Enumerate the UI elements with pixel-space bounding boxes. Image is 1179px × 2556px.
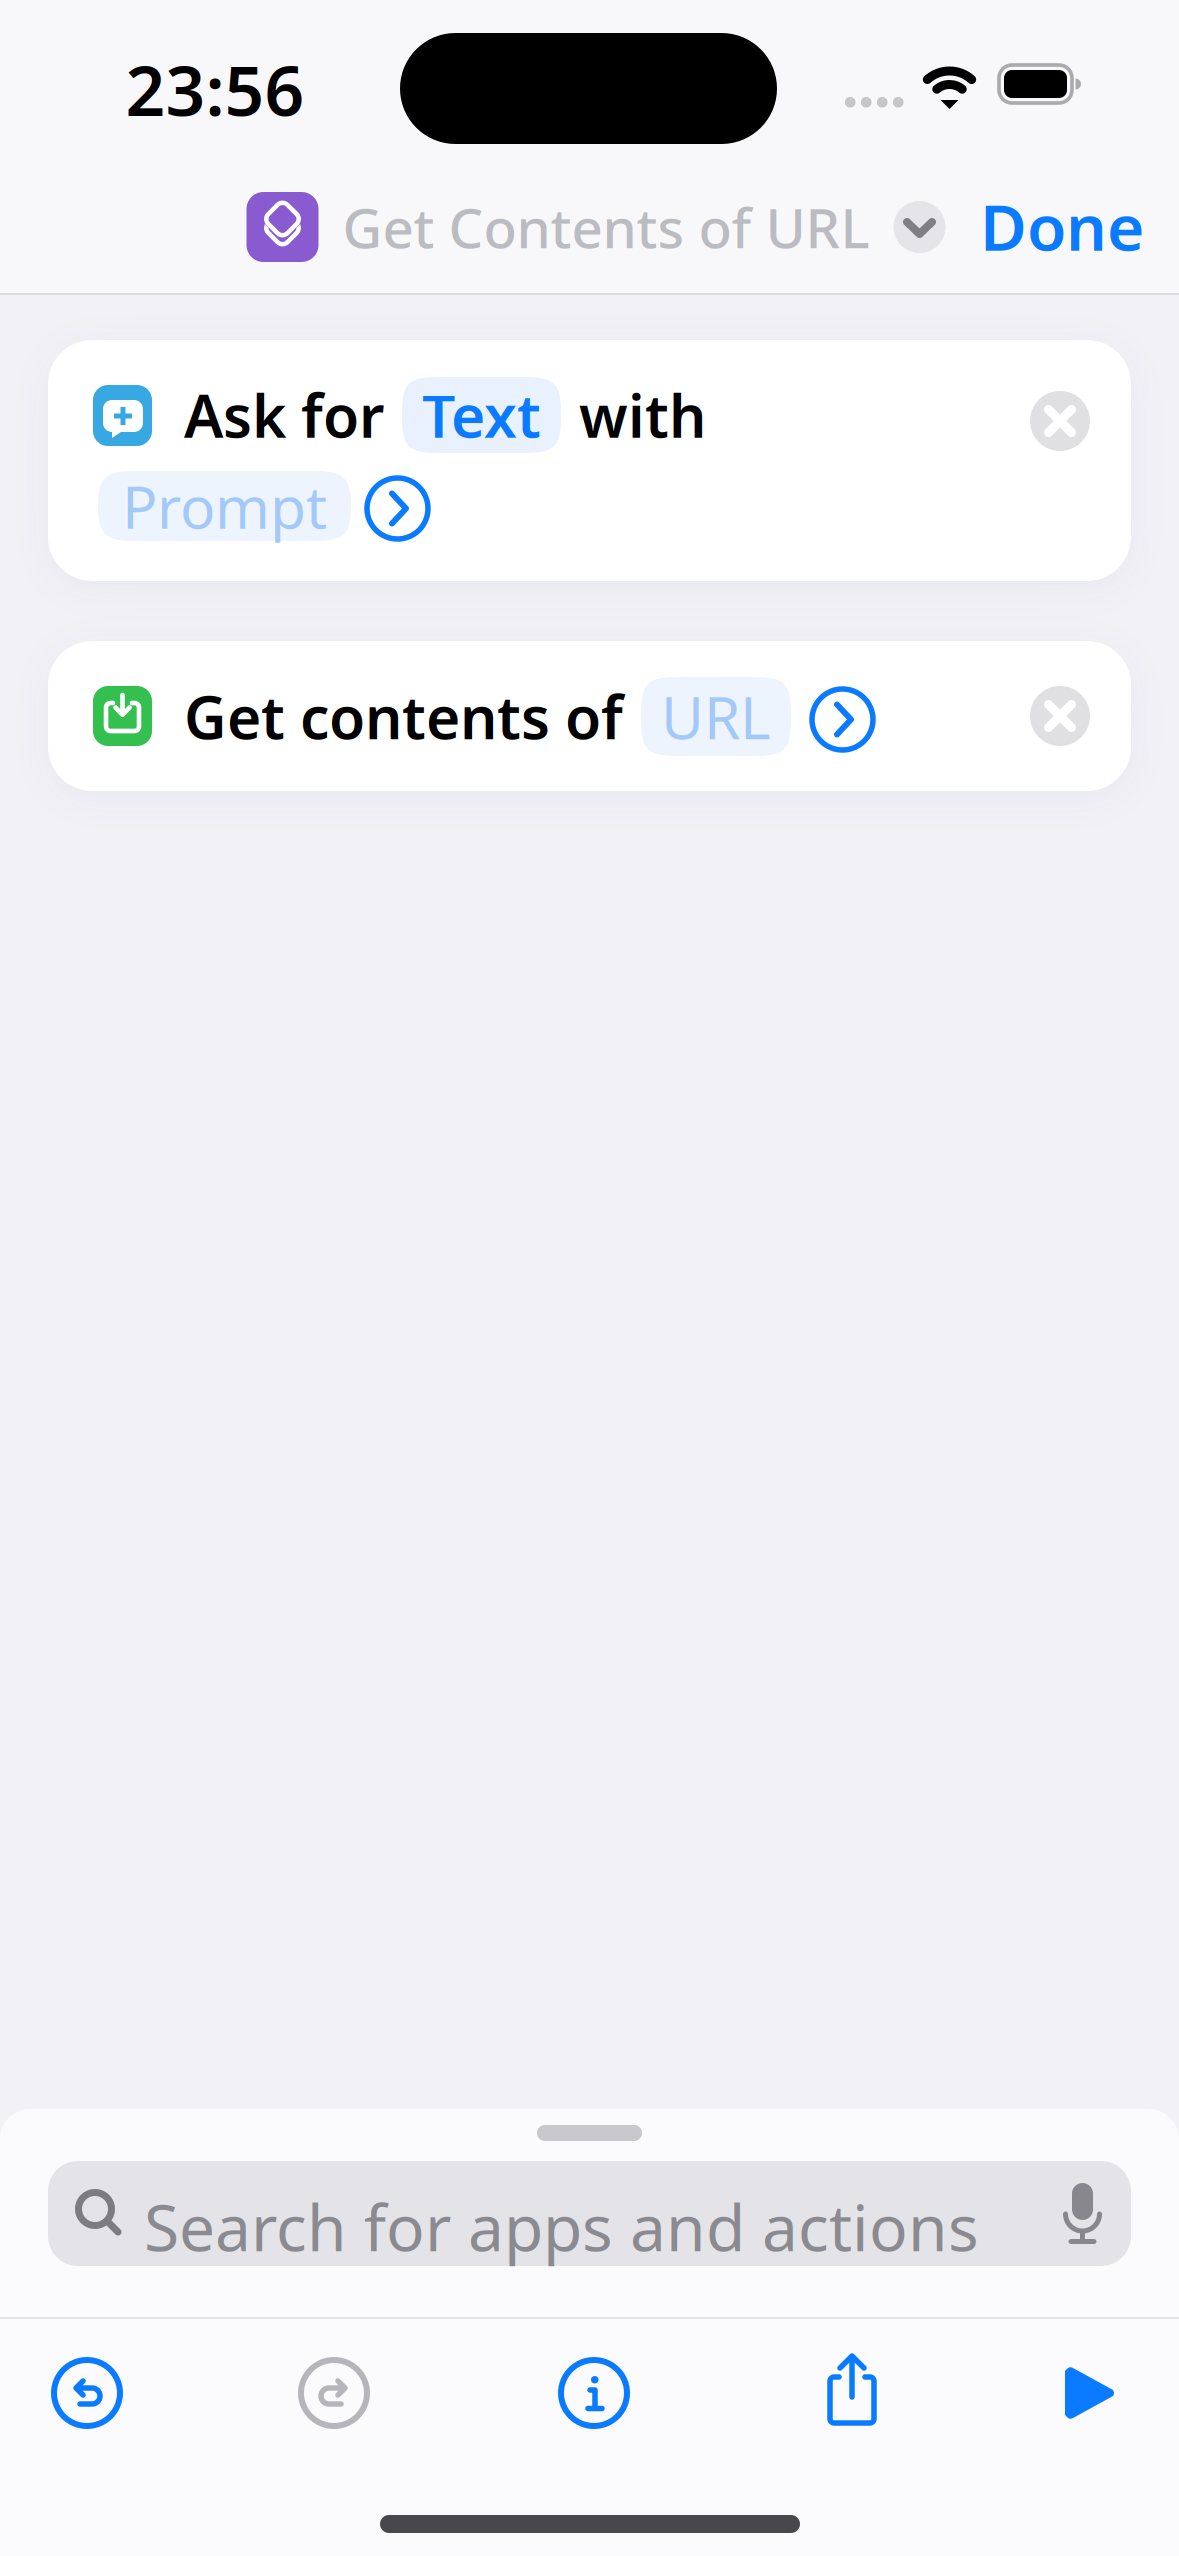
- button[interactable]: Text: [402, 377, 561, 453]
- staticText: Done: [980, 183, 1144, 268]
- staticText: Search for apps and actions: [144, 2184, 979, 2269]
- button[interactable]: Run: [1065, 2366, 1115, 2420]
- button[interactable]: Prompt: [98, 471, 351, 541]
- button[interactable]: URL: [641, 677, 791, 756]
- button[interactable]: Get contents of: [48, 641, 1131, 791]
- button[interactable]: Shortcut name options: [246, 191, 945, 263]
- button[interactable]: Show more: [812, 689, 873, 750]
- button[interactable]: Redo: [301, 2360, 367, 2426]
- button[interactable]: Show more: [367, 478, 428, 539]
- button[interactable]: Share: [822, 2353, 882, 2426]
- staticText: Prompt: [122, 467, 327, 545]
- button[interactable]: Delete action: [1030, 391, 1090, 451]
- button[interactable]: Undo: [54, 2360, 120, 2426]
- button[interactable]: Info: [561, 2360, 627, 2426]
- staticText: Ask for: [184, 376, 384, 454]
- button[interactable]: Search for apps and actions: [48, 2161, 1131, 2266]
- button[interactable]: Delete action: [1030, 686, 1090, 746]
- button[interactable]: Ask for: [48, 340, 1131, 581]
- staticText: with: [579, 376, 706, 454]
- staticText: 23:56: [125, 43, 304, 135]
- staticText: Get contents of: [184, 677, 623, 755]
- button[interactable]: Done: [980, 183, 1144, 268]
- staticText: URL: [661, 677, 771, 755]
- staticText: Text: [422, 376, 541, 454]
- staticText: Get Contents of URL: [342, 191, 869, 263]
